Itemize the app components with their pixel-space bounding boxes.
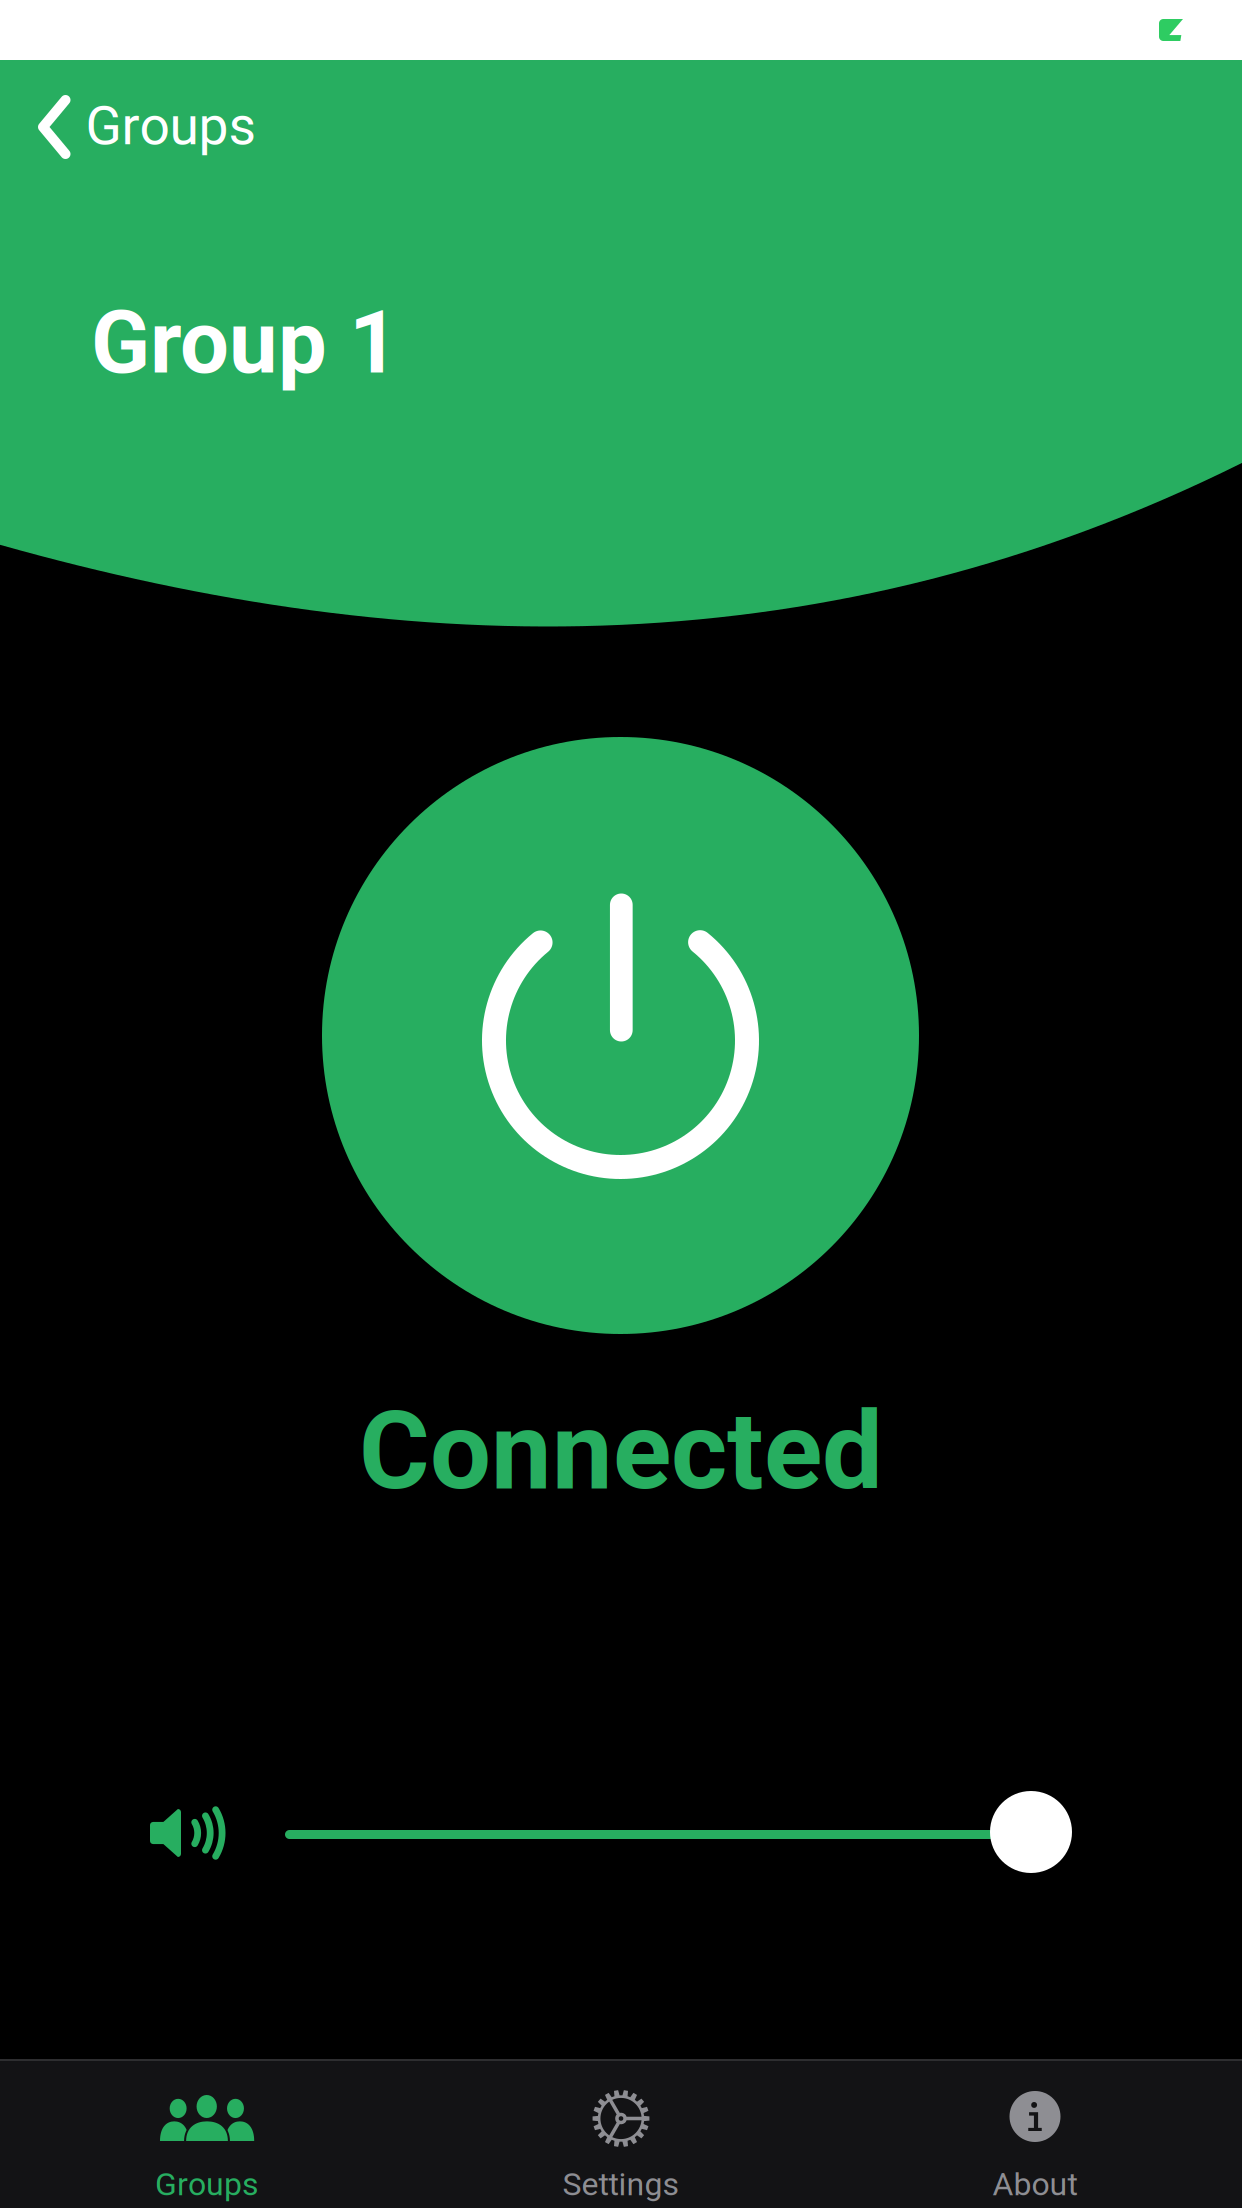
button[interactable]: Settings: [414, 2061, 828, 2208]
staticText: Groups: [85, 95, 256, 157]
button[interactable]: Groups: [0, 2061, 414, 2208]
button[interactable]: Volume: [285, 1791, 1072, 1873]
staticText: Settings: [562, 2165, 679, 2203]
staticText: About: [992, 2165, 1077, 2203]
button[interactable]: Groups: [0, 77, 420, 177]
staticText: Groups: [155, 2165, 259, 2203]
staticText: Connected: [359, 1388, 883, 1514]
staticText: Group 1: [91, 292, 399, 394]
button[interactable]: About: [828, 2061, 1242, 2208]
button[interactable]: Power: [322, 737, 919, 1334]
